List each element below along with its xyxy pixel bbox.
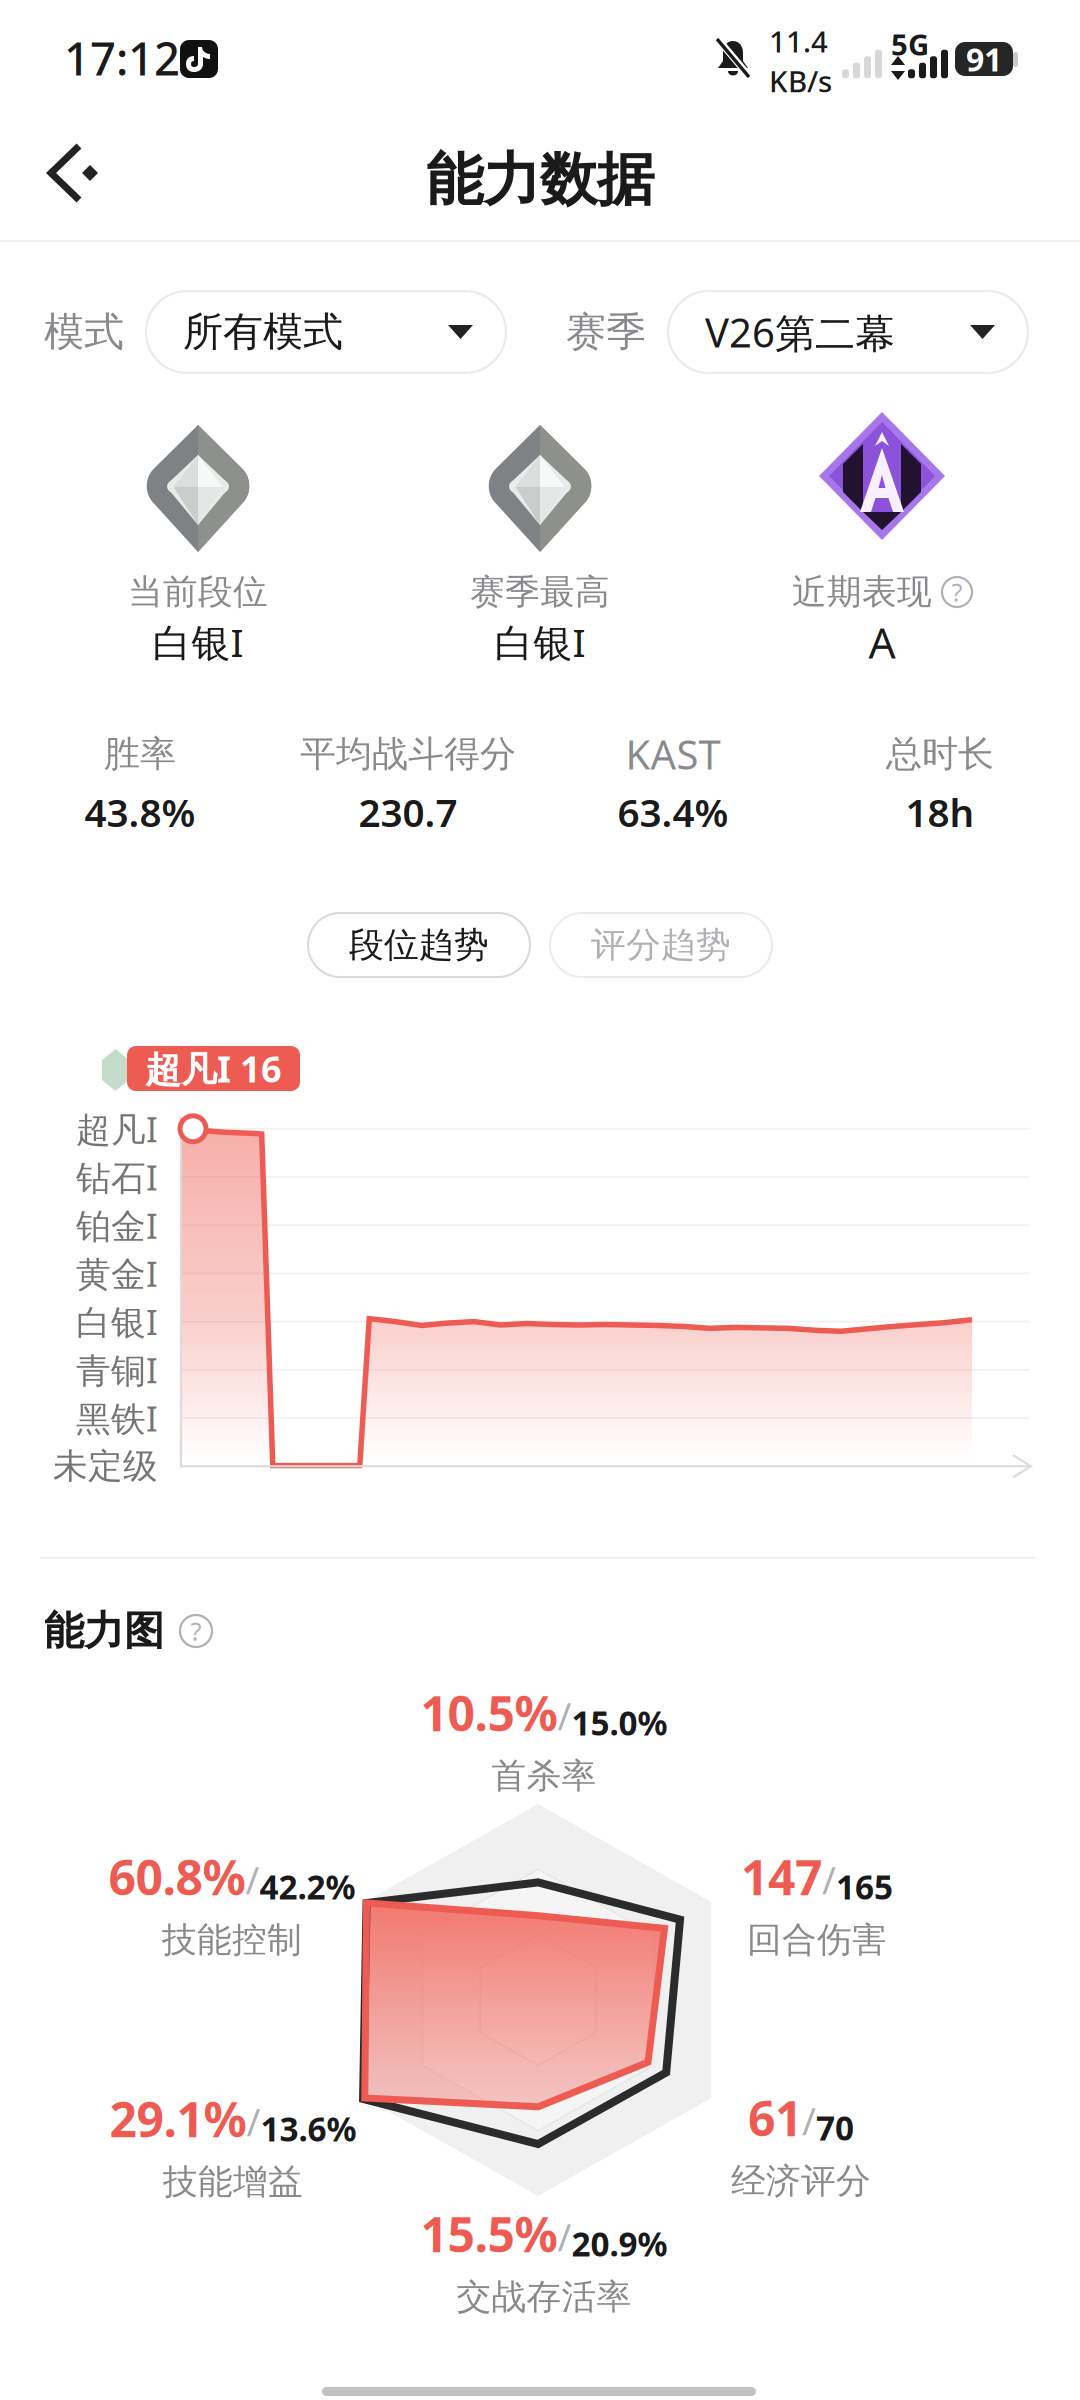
staticText: 赛季 xyxy=(566,307,646,356)
staticText: 白银I xyxy=(494,616,585,668)
staticText: 29.1% xyxy=(109,2087,246,2150)
staticText: 70 xyxy=(816,2105,854,2150)
staticText: 超凡I 16 xyxy=(145,1045,282,1092)
staticText: 胜率 xyxy=(104,732,176,776)
staticText: / xyxy=(246,2097,260,2147)
staticText: 42.2% xyxy=(259,1864,355,1909)
button[interactable]: 近期表现说明 xyxy=(942,577,972,607)
staticText: 评分趋势 xyxy=(591,924,731,966)
staticText: ? xyxy=(190,1614,201,1648)
staticText: 超凡I xyxy=(76,1106,158,1152)
staticText: 能力数据 xyxy=(426,145,654,215)
staticText: 模式 xyxy=(44,307,124,356)
staticText: 钻石I xyxy=(76,1154,158,1200)
staticText: 赛季最高 xyxy=(470,571,610,613)
staticText: 段位趋势 xyxy=(349,924,489,966)
staticText: 20.9% xyxy=(571,2221,667,2266)
staticText: 所有模式 xyxy=(183,307,343,356)
staticText: 13.6% xyxy=(260,2106,356,2151)
staticText: 白银I xyxy=(152,616,243,668)
staticText: 15.0% xyxy=(571,1700,667,1745)
staticText: 近期表现 xyxy=(792,571,932,613)
staticText: 黄金I xyxy=(76,1250,158,1296)
staticText: 未定级 xyxy=(53,1445,158,1488)
staticText: KAST xyxy=(625,727,720,780)
staticText: 铂金I xyxy=(76,1202,158,1248)
staticText: 当前段位 xyxy=(128,571,268,613)
staticText: 白银I xyxy=(76,1299,158,1345)
staticText: V26第二幕 xyxy=(705,305,895,359)
staticText: 147 xyxy=(741,1845,822,1908)
staticText: ? xyxy=(951,575,962,609)
staticText: 165 xyxy=(836,1864,893,1909)
staticText: / xyxy=(557,2212,571,2262)
staticText: 43.8% xyxy=(84,786,195,838)
button[interactable]: 能力图说明 xyxy=(180,1615,212,1647)
staticText: 技能控制 xyxy=(162,1919,302,1961)
staticText: 技能增益 xyxy=(163,2161,303,2203)
staticText: 10.5% xyxy=(420,1681,557,1744)
staticText: 交战存活率 xyxy=(456,2276,631,2318)
staticText: / xyxy=(245,1855,259,1905)
staticText: 60.8% xyxy=(108,1845,245,1908)
staticText: A xyxy=(868,614,895,670)
button[interactable]: 段位趋势 xyxy=(308,913,530,977)
staticText: 18h xyxy=(905,786,974,838)
staticText: 230.7 xyxy=(358,786,457,838)
staticText: 61 xyxy=(748,2086,802,2149)
button[interactable]: 评分趋势 xyxy=(550,913,772,977)
staticText: 5G xyxy=(891,24,929,63)
staticText: KB/s xyxy=(769,61,832,100)
staticText: / xyxy=(802,2096,816,2146)
staticText: 15.5% xyxy=(420,2202,557,2265)
staticText: 91 xyxy=(966,38,1002,80)
staticText: 经济评分 xyxy=(731,2160,871,2202)
button[interactable]: 返回 xyxy=(39,138,131,228)
staticText: 首杀率 xyxy=(491,1755,596,1797)
staticText: 回合伤害 xyxy=(747,1919,887,1961)
staticText: 63.4% xyxy=(617,786,728,838)
button[interactable]: V26第二幕 xyxy=(668,291,1028,373)
staticText: 黑铁I xyxy=(76,1395,158,1441)
staticText: 总时长 xyxy=(886,732,994,776)
staticText: 17:12 xyxy=(64,28,180,88)
staticText: 能力图 xyxy=(44,1606,164,1655)
staticText: / xyxy=(822,1855,836,1905)
button[interactable]: 所有模式 xyxy=(146,291,506,373)
staticText: 平均战斗得分 xyxy=(300,732,516,776)
staticText: 青铜I xyxy=(76,1347,158,1393)
staticText: / xyxy=(557,1691,571,1741)
staticText: 11.4 xyxy=(769,21,828,60)
